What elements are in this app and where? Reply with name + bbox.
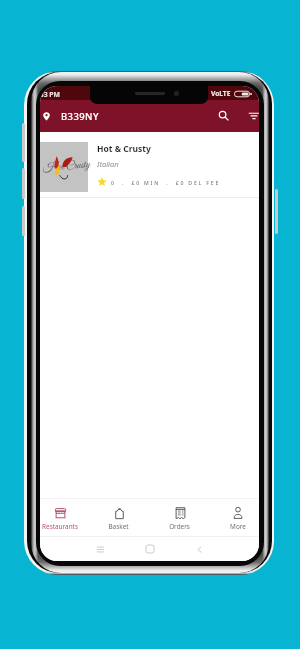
staticText: Hot Crusty [42,158,91,176]
staticText: 0 . £0 MIN . £0 DEL FEE [111,179,221,186]
button[interactable]: Restaurants [40,498,88,536]
staticText: VoLTE [211,89,231,98]
button[interactable]: Hot Crusty [40,132,259,198]
button[interactable]: B339NY [40,100,105,132]
button[interactable]: Home [142,541,158,557]
staticText: Restaurants [42,522,78,531]
button[interactable]: Basket [90,498,146,536]
staticText: Italian [97,159,119,169]
button[interactable]: Filter [243,103,259,129]
staticText: More [230,522,246,531]
staticText: Hot & Crusty [97,143,151,155]
staticText: Orders [169,522,190,531]
button[interactable]: Recents [92,541,108,557]
button[interactable]: Search [214,103,234,129]
button[interactable]: Orders [151,498,207,536]
staticText: 4:33 PM [40,90,60,99]
staticText: B339NY [61,110,99,123]
button[interactable]: More [210,498,259,536]
button[interactable]: Back [191,541,207,557]
staticText: Basket [108,522,129,531]
